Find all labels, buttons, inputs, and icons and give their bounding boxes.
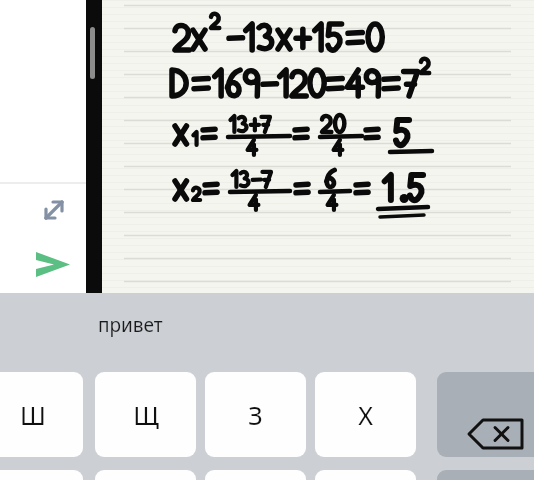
button[interactable]: Backspace	[437, 372, 534, 457]
staticText: Ш	[20, 398, 46, 432]
button[interactable]	[0, 470, 83, 480]
button[interactable]	[95, 470, 196, 480]
button[interactable]: Expand	[38, 194, 70, 226]
button[interactable]	[315, 470, 416, 480]
button[interactable]: Ш	[0, 372, 83, 457]
staticText: Щ	[133, 398, 159, 432]
staticText: З	[248, 398, 263, 432]
staticText: Х	[358, 398, 373, 432]
button[interactable]: Send	[34, 248, 74, 282]
staticText: привет	[98, 312, 163, 338]
button[interactable]: З	[205, 372, 306, 457]
button[interactable]: привет	[90, 310, 200, 338]
button[interactable]: Щ	[95, 372, 196, 457]
button[interactable]	[205, 470, 306, 480]
button[interactable]: Backspace	[437, 470, 534, 480]
button[interactable]: Х	[315, 372, 416, 457]
